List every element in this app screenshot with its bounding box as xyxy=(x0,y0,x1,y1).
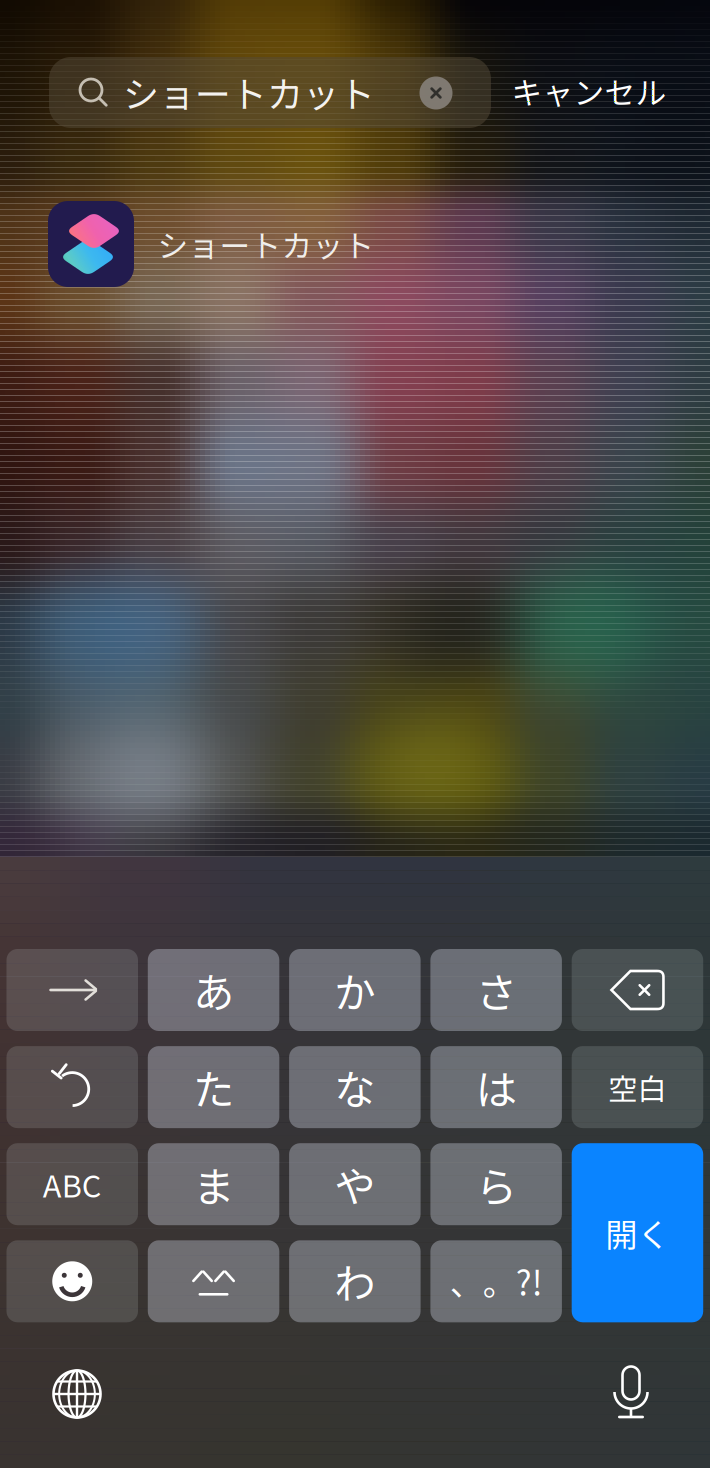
button[interactable]: 空白 xyxy=(572,1046,703,1128)
button[interactable] xyxy=(148,1240,279,1322)
button[interactable]: Switch keyboard xyxy=(49,1366,105,1422)
staticText: さ xyxy=(476,960,517,1020)
staticText: か xyxy=(334,960,375,1020)
button[interactable]: は xyxy=(430,1046,562,1128)
button[interactable]: ABC xyxy=(6,1143,138,1225)
button[interactable]: た xyxy=(148,1046,279,1128)
button[interactable] xyxy=(572,949,703,1031)
staticText: な xyxy=(334,1057,375,1117)
staticText: キャンセル xyxy=(511,69,666,113)
button[interactable] xyxy=(6,949,138,1031)
button[interactable]: 開く xyxy=(572,1143,703,1322)
staticText: 空白 xyxy=(608,1066,666,1108)
staticText: ショートカット xyxy=(123,66,375,118)
staticText: ショートカット xyxy=(157,222,374,266)
staticText: ま xyxy=(193,1154,234,1214)
staticText: は xyxy=(476,1057,517,1117)
button[interactable]: ショートカット xyxy=(48,201,668,287)
button[interactable]: キャンセル xyxy=(496,63,682,119)
staticText: 、。?! xyxy=(450,1257,543,1305)
staticText: あ xyxy=(193,960,234,1020)
button[interactable]: ま xyxy=(148,1143,279,1225)
button[interactable]: や xyxy=(289,1143,421,1225)
button[interactable]: あ xyxy=(148,949,279,1031)
button[interactable] xyxy=(6,1240,138,1322)
staticText: わ xyxy=(334,1251,375,1311)
staticText: た xyxy=(193,1057,234,1117)
staticText: や xyxy=(334,1154,375,1214)
button[interactable]: さ xyxy=(430,949,562,1031)
staticText: ら xyxy=(476,1154,517,1214)
button[interactable]: ら xyxy=(430,1143,562,1225)
button[interactable]: ショートカット xyxy=(49,57,491,128)
button[interactable] xyxy=(6,1046,138,1128)
button[interactable]: 、。?! xyxy=(430,1240,562,1322)
button[interactable]: Dictate xyxy=(603,1366,659,1422)
button[interactable]: な xyxy=(289,1046,421,1128)
staticText: ABC xyxy=(43,1162,102,1206)
button[interactable]: か xyxy=(289,949,421,1031)
button[interactable]: わ xyxy=(289,1240,421,1322)
staticText: 開く xyxy=(605,1210,669,1256)
